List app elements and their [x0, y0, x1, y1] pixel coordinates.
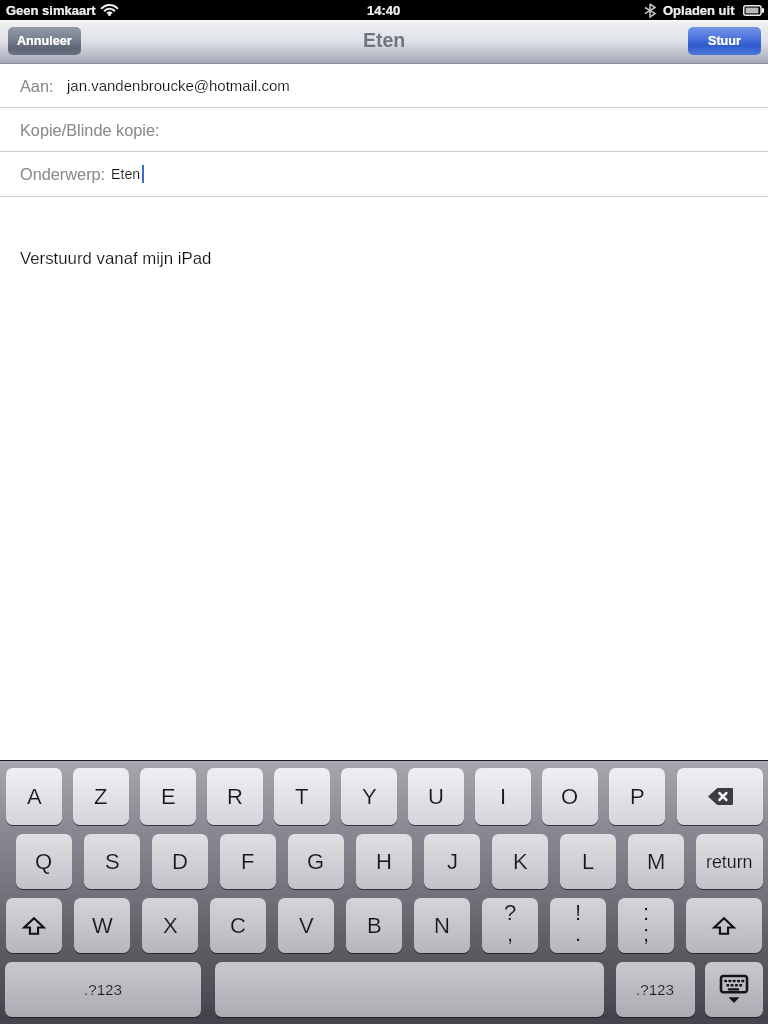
staticText: J: [447, 849, 458, 874]
button[interactable]: W: [74, 898, 130, 953]
staticText: .: [575, 921, 582, 946]
staticText: W: [92, 913, 113, 938]
staticText: return: [706, 852, 753, 872]
staticText: Y: [362, 784, 377, 809]
button[interactable]: T: [274, 768, 330, 825]
button[interactable]: K: [492, 834, 548, 889]
staticText: :: [643, 900, 650, 925]
staticText: Geen simkaart: [6, 3, 96, 18]
button[interactable]: P: [609, 768, 665, 825]
button[interactable]: Stuur: [688, 27, 761, 55]
staticText: V: [299, 913, 314, 938]
button[interactable]: return: [696, 834, 763, 889]
staticText: E: [161, 784, 176, 809]
button[interactable]: N: [414, 898, 470, 953]
staticText: Q: [35, 849, 53, 874]
button[interactable]: .?123: [616, 962, 695, 1017]
staticText: Opladen uit: [663, 3, 735, 18]
staticText: !: [575, 900, 582, 925]
staticText: jan.vandenbroucke@hotmail.com: [67, 77, 290, 94]
button[interactable]: Q: [16, 834, 72, 889]
staticText: G: [307, 849, 325, 874]
button[interactable]: Shift: [686, 898, 762, 953]
staticText: S: [105, 849, 120, 874]
staticText: X: [163, 913, 178, 938]
staticText: .?123: [84, 981, 123, 998]
button[interactable]: Aan:: [0, 64, 768, 107]
button[interactable]: H: [356, 834, 412, 889]
button[interactable]: M: [628, 834, 684, 889]
button[interactable]: C: [210, 898, 266, 953]
button[interactable]: Onderwerp:: [0, 152, 768, 195]
staticText: Z: [94, 784, 108, 809]
staticText: H: [376, 849, 392, 874]
staticText: F: [241, 849, 255, 874]
button[interactable]: ?: [482, 898, 538, 953]
button[interactable]: Space: [215, 962, 604, 1017]
button[interactable]: Shift: [6, 898, 62, 953]
button[interactable]: !: [550, 898, 606, 953]
button[interactable]: Hide keyboard: [705, 962, 763, 1017]
button[interactable]: I: [475, 768, 531, 825]
staticText: L: [582, 849, 595, 874]
button[interactable]: Y: [341, 768, 397, 825]
staticText: C: [230, 913, 246, 938]
button[interactable]: G: [288, 834, 344, 889]
button[interactable]: E: [140, 768, 196, 825]
staticText: Kopie/Blinde kopie:: [20, 121, 160, 139]
staticText: U: [428, 784, 444, 809]
button[interactable]: V: [278, 898, 334, 953]
staticText: Eten: [111, 166, 141, 182]
button[interactable]: :: [618, 898, 674, 953]
button[interactable]: F: [220, 834, 276, 889]
button[interactable]: B: [346, 898, 402, 953]
staticText: ,: [507, 921, 514, 946]
staticText: A: [27, 784, 42, 809]
staticText: .?123: [636, 981, 675, 998]
staticText: Verstuurd vanaf mijn iPad: [20, 249, 212, 268]
button[interactable]: .?123: [5, 962, 201, 1017]
staticText: P: [630, 784, 645, 809]
button[interactable]: Backspace: [677, 768, 763, 825]
staticText: R: [227, 784, 243, 809]
button[interactable]: L: [560, 834, 616, 889]
staticText: Eten: [363, 29, 406, 51]
staticText: I: [500, 784, 507, 809]
button[interactable]: Annuleer: [8, 27, 81, 55]
button[interactable]: S: [84, 834, 140, 889]
staticText: Aan:: [20, 77, 54, 95]
button[interactable]: A: [6, 768, 62, 825]
staticText: O: [561, 784, 579, 809]
staticText: K: [513, 849, 528, 874]
button[interactable]: R: [207, 768, 263, 825]
staticText: T: [295, 784, 309, 809]
staticText: M: [647, 849, 666, 874]
button[interactable]: D: [152, 834, 208, 889]
staticText: 14:40: [367, 3, 401, 18]
staticText: Annuleer: [17, 34, 72, 48]
staticText: Stuur: [708, 34, 741, 48]
staticText: B: [367, 913, 382, 938]
staticText: D: [172, 849, 188, 874]
staticText: Onderwerp:: [20, 165, 106, 183]
button[interactable]: O: [542, 768, 598, 825]
button[interactable]: X: [142, 898, 198, 953]
staticText: N: [434, 913, 450, 938]
button[interactable]: Kopie/Blinde kopie:: [0, 108, 768, 151]
staticText: ?: [504, 900, 517, 925]
button[interactable]: U: [408, 768, 464, 825]
button[interactable]: J: [424, 834, 480, 889]
staticText: ;: [643, 921, 650, 946]
button[interactable]: Z: [73, 768, 129, 825]
